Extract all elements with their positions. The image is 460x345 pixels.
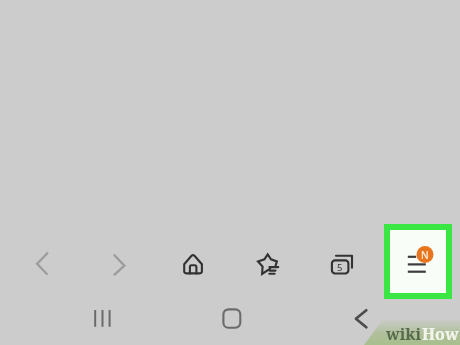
button[interactable]: Menu	[384, 224, 452, 299]
button[interactable]: Forward	[100, 246, 138, 284]
button[interactable]: System back	[343, 300, 381, 338]
staticText: How	[422, 323, 459, 345]
button[interactable]: Recents	[84, 300, 122, 338]
button[interactable]: Bookmarks	[250, 246, 288, 284]
button[interactable]: Tabs, 5 open	[326, 248, 358, 280]
staticText: wiki	[386, 323, 422, 345]
button[interactable]: Back	[24, 246, 62, 284]
staticText: N	[421, 248, 429, 262]
staticText: 5	[337, 261, 343, 274]
button[interactable]: Home	[175, 246, 213, 284]
button[interactable]: Home screen	[213, 300, 251, 338]
